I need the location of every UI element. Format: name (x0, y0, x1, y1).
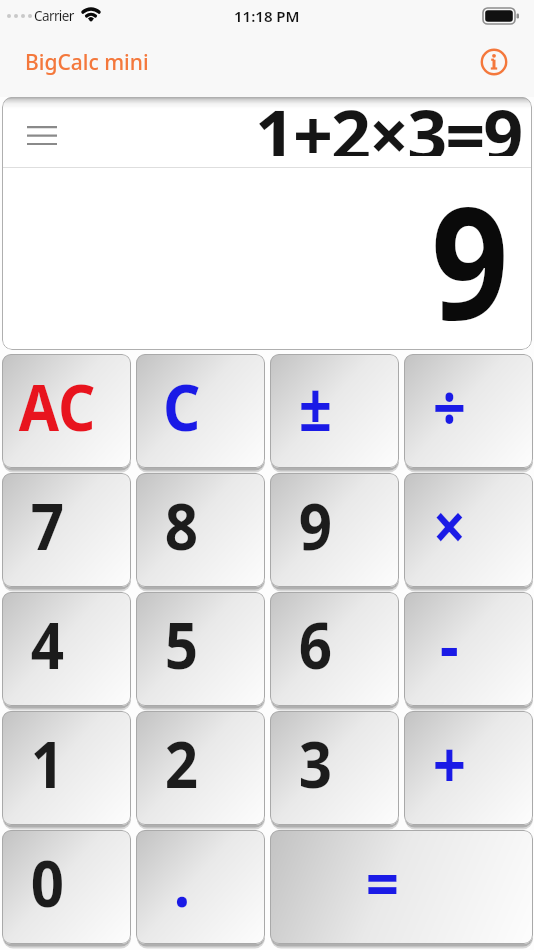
button[interactable]: = (270, 830, 533, 944)
button[interactable]: 3 (270, 711, 399, 825)
button[interactable]: + (404, 711, 533, 825)
staticText: 5 (165, 601, 198, 688)
staticText: ÷ (433, 363, 466, 450)
staticText: AC (19, 363, 96, 450)
staticText: 1 (31, 720, 64, 807)
staticText: 7 (31, 482, 64, 569)
staticText: 2 (165, 720, 198, 807)
button[interactable]: 1 (2, 711, 131, 825)
button[interactable] (479, 47, 509, 77)
staticText: 6 (299, 601, 332, 688)
button[interactable]: × (404, 473, 533, 587)
button[interactable]: ± (270, 354, 399, 468)
staticText: . (174, 839, 190, 926)
button[interactable]: ÷ (404, 354, 533, 468)
staticText: 9 (299, 482, 332, 569)
button[interactable]: 4 (2, 592, 131, 706)
staticText: 9 (431, 152, 509, 334)
staticText: 4 (31, 601, 64, 688)
button[interactable]: 2 (136, 711, 265, 825)
staticText: C (163, 363, 201, 450)
button[interactable]: 8 (136, 473, 265, 587)
button[interactable]: C (136, 354, 265, 468)
button[interactable]: 6 (270, 592, 399, 706)
staticText: 8 (165, 482, 198, 569)
button[interactable]: AC (2, 354, 131, 468)
staticText: + (433, 720, 466, 807)
staticText: ± (299, 363, 332, 450)
staticText: 3 (299, 720, 332, 807)
staticText: BigCalc mini (25, 48, 149, 77)
button[interactable]: 7 (2, 473, 131, 587)
button[interactable]: 0 (2, 830, 131, 944)
staticText: - (440, 601, 459, 688)
button[interactable]: . (136, 830, 265, 944)
button[interactable]: 5 (136, 592, 265, 706)
staticText: 1+2×3=9 (255, 97, 522, 156)
button[interactable] (25, 123, 59, 147)
button[interactable]: 9 (270, 473, 399, 587)
staticText: Carrier (34, 7, 74, 25)
staticText: 0 (31, 839, 64, 926)
button[interactable]: - (404, 592, 533, 706)
staticText: 11:18 PM (234, 6, 300, 26)
staticText: = (366, 839, 399, 926)
staticText: × (433, 482, 466, 569)
